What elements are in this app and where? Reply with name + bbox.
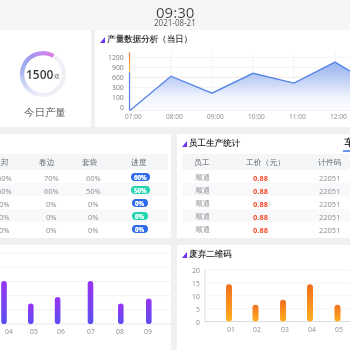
staticText: 0%: [46, 212, 57, 222]
staticText: 12:00: [330, 112, 347, 121]
staticText: 60%: [0, 173, 12, 183]
button[interactable]: 废弃二维码: [177, 245, 350, 350]
staticText: 0%: [88, 225, 99, 235]
button[interactable]: 员工生产统计: [177, 134, 350, 238]
staticText: 0%: [46, 225, 57, 235]
staticText: 10: [192, 292, 200, 301]
staticText: 06: [57, 327, 65, 336]
staticText: 04: [308, 325, 316, 334]
staticText: 22051: [319, 186, 341, 196]
staticText: 60%: [44, 186, 59, 196]
staticText: 08:00: [166, 112, 183, 121]
staticText: 0%: [88, 212, 99, 222]
staticText: 300: [112, 83, 124, 92]
staticText: 0.88: [253, 186, 268, 196]
staticText: 20: [192, 266, 200, 275]
staticText: 600: [112, 73, 124, 82]
staticText: 工价（元）: [246, 157, 285, 167]
staticText: 70%: [44, 173, 59, 183]
staticText: 50%: [134, 186, 147, 194]
staticText: 卷边: [39, 157, 55, 167]
staticText: 废弃二维码: [189, 249, 232, 260]
staticText: 02: [253, 325, 261, 334]
staticText: 进度: [131, 157, 147, 167]
staticText: 拉邦: [0, 157, 9, 167]
staticText: 15: [192, 279, 200, 288]
staticText: 产量数据分析（当日）: [107, 34, 192, 45]
staticText: 22051: [319, 173, 341, 183]
staticText: 0%: [0, 225, 10, 235]
button[interactable]: 04: [0, 245, 171, 350]
staticText: 900: [112, 63, 124, 72]
staticText: 09:30: [156, 2, 195, 22]
staticText: 员工: [194, 157, 210, 167]
staticText: 1200: [108, 53, 124, 62]
staticText: 0%: [46, 199, 57, 209]
staticText: 双: [54, 73, 60, 81]
button[interactable]: 1500: [0, 30, 91, 127]
staticText: 08: [116, 327, 124, 336]
staticText: 0%: [135, 212, 145, 220]
staticText: 09:00: [207, 112, 224, 121]
staticText: 0%: [0, 212, 10, 222]
staticText: 60%: [134, 173, 147, 181]
button[interactable]: 车: [343, 136, 350, 152]
staticText: 0.88: [253, 173, 268, 183]
staticText: 01: [227, 325, 235, 334]
staticText: 计件码: [318, 157, 342, 167]
staticText: 05: [335, 325, 343, 334]
staticText: 05: [30, 327, 38, 336]
staticText: 0%: [135, 225, 145, 233]
button[interactable]: 产量数据分析（当日）: [95, 30, 350, 127]
staticText: 50%: [86, 186, 101, 196]
staticText: 0.88: [253, 212, 268, 222]
staticText: 0%: [135, 199, 145, 207]
staticText: 11:00: [289, 112, 306, 121]
staticText: 0: [196, 318, 200, 327]
staticText: 顺通: [195, 212, 210, 221]
staticText: 0%: [88, 199, 99, 209]
staticText: 套袋: [82, 157, 98, 167]
staticText: 顺通: [195, 225, 210, 234]
staticText: 顺通: [195, 199, 210, 208]
staticText: 员工生产统计: [189, 138, 240, 149]
staticText: 60%: [86, 173, 101, 183]
staticText: 顺通: [195, 186, 210, 195]
staticText: 0%: [0, 199, 10, 209]
staticText: 0: [120, 103, 124, 112]
staticText: 10:00: [248, 112, 265, 121]
staticText: 1500: [26, 66, 54, 82]
staticText: 09: [144, 327, 152, 336]
staticText: 60%: [0, 186, 12, 196]
staticText: 07:00: [125, 112, 142, 121]
staticText: 5: [196, 305, 200, 314]
staticText: 22051: [319, 225, 341, 235]
staticText: 22051: [319, 199, 341, 209]
staticText: 2021-08-21: [154, 17, 196, 28]
staticText: 车: [344, 136, 350, 149]
staticText: 03: [281, 325, 289, 334]
staticText: 顺通: [195, 173, 210, 182]
staticText: 今日产量: [24, 106, 66, 119]
staticText: 07: [87, 327, 95, 336]
staticText: 0.88: [253, 199, 268, 209]
staticText: 22051: [319, 212, 341, 222]
staticText: 04: [5, 327, 13, 336]
button[interactable]: 拉邦: [0, 134, 171, 238]
staticText: 100: [112, 93, 124, 102]
staticText: 0.88: [253, 225, 268, 235]
